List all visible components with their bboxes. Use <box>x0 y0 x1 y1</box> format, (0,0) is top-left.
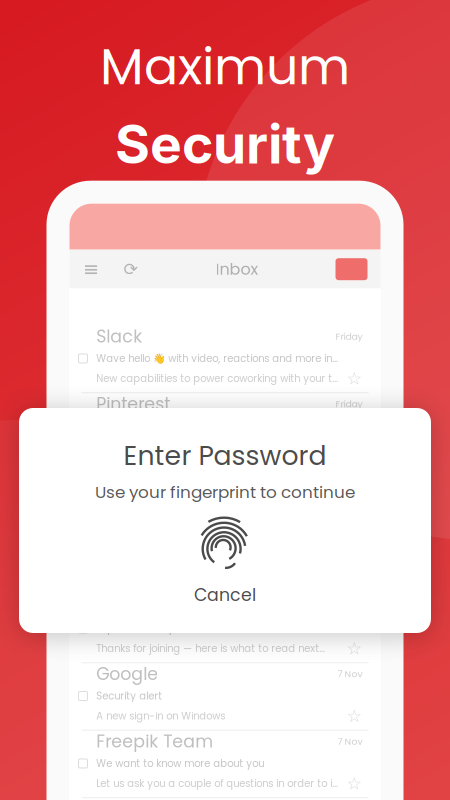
staticText: Google <box>96 662 158 686</box>
staticText: Slack <box>96 324 142 348</box>
staticText: ☆ <box>346 638 362 659</box>
staticText: Pinterest <box>96 392 170 416</box>
staticText: Security <box>115 112 335 176</box>
staticText: Top stories for you this week <box>96 621 234 635</box>
staticText: Security alert <box>96 689 162 703</box>
staticText: Enter Password <box>123 437 326 474</box>
staticText: *MC_PREVIEW_TEXT* Welcome to Pngtree! De… <box>96 486 328 500</box>
staticText: Cancel <box>194 583 256 607</box>
staticText: Download free graphic resources for your… <box>96 507 333 521</box>
staticText: 7 Nov <box>337 667 362 680</box>
staticText: We want to know more about you <box>96 756 264 770</box>
staticText: Let us ask you a couple of questions in … <box>96 777 338 791</box>
staticText: New projects curated for you <box>96 554 240 568</box>
staticText: Freepik Team <box>96 729 213 753</box>
staticText: ☆ <box>346 368 362 389</box>
staticText: Inbox <box>215 258 258 280</box>
staticText: 7 Nov <box>337 735 362 748</box>
staticText: See what is trending this week on your b… <box>96 439 330 453</box>
button[interactable]: Cancel <box>164 577 286 613</box>
staticText: Medium Daily <box>96 594 214 618</box>
staticText: A new sign-in on Windows <box>96 709 225 723</box>
staticText: New capabilities to power coworking with… <box>96 372 338 386</box>
staticText: Maximum <box>100 31 350 102</box>
staticText: Dribbble <box>96 797 169 800</box>
staticText: ≡ <box>82 258 99 281</box>
staticText: Thanks for joining — here is what to rea… <box>96 642 325 656</box>
staticText: Friday <box>335 397 362 410</box>
staticText: Pngtree <box>96 459 163 483</box>
staticText: ☆ <box>346 773 362 794</box>
staticText: Wave hello 👋 with video, reactions and m… <box>96 351 338 365</box>
staticText: Friday <box>335 330 362 343</box>
staticText: ☆ <box>346 706 362 726</box>
staticText: ⟳ <box>123 259 138 279</box>
staticText: Use your fingerprint to continue <box>95 480 355 504</box>
